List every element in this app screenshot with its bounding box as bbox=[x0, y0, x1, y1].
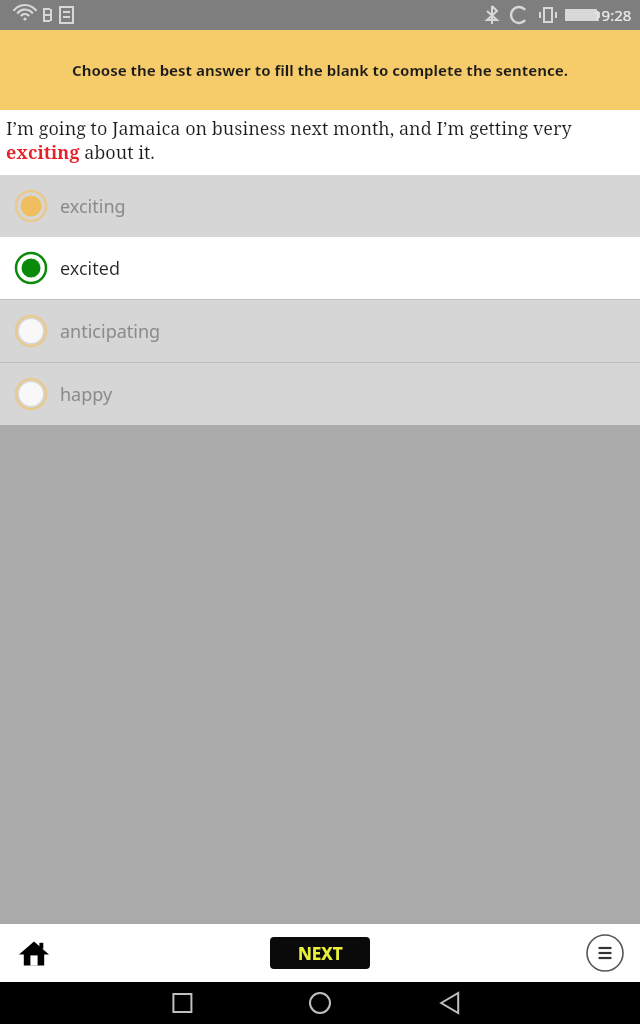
staticText: NEXT bbox=[298, 942, 343, 965]
staticText: happy bbox=[60, 382, 113, 407]
staticText: 19:28 bbox=[593, 5, 632, 25]
staticText: exciting bbox=[60, 194, 126, 219]
staticText: excited bbox=[60, 256, 120, 281]
button[interactable]: anticipating bbox=[0, 300, 640, 362]
button[interactable]: Menu bbox=[585, 933, 625, 973]
button[interactable]: exciting bbox=[0, 175, 640, 237]
button[interactable]: excited bbox=[0, 237, 640, 299]
staticText: anticipating bbox=[60, 319, 161, 344]
staticText: Choose the best answer to fill the blank… bbox=[72, 60, 568, 80]
button[interactable]: Home bbox=[12, 931, 56, 975]
button[interactable]: NEXT bbox=[270, 937, 370, 969]
button[interactable]: happy bbox=[0, 363, 640, 425]
staticText: I’m going to Jamaica on business next mo… bbox=[6, 116, 634, 164]
